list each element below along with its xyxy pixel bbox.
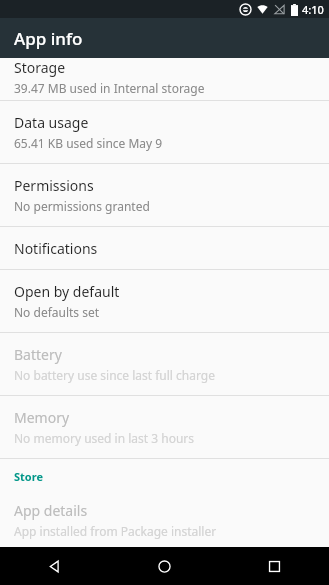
- staticText: Permissions: [14, 176, 94, 195]
- staticText: App info: [14, 27, 83, 50]
- staticText: No memory used in last 3 hours: [14, 430, 195, 446]
- staticText: 39.47 MB used in Internal storage: [14, 80, 205, 96]
- button[interactable]: Memory: [0, 396, 329, 458]
- staticText: Memory: [14, 408, 70, 427]
- staticText: No defaults set: [14, 304, 100, 320]
- staticText: Open by default: [14, 282, 120, 301]
- button[interactable]: Battery: [0, 333, 329, 395]
- staticText: Battery: [14, 345, 62, 364]
- staticText: 65.41 KB used since May 9: [14, 135, 163, 151]
- button[interactable]: Permissions: [0, 164, 329, 226]
- button[interactable]: Data usage: [0, 101, 329, 163]
- staticText: 4:10: [302, 2, 324, 17]
- staticText: Notifications: [14, 239, 98, 258]
- staticText: No battery use since last full charge: [14, 367, 215, 383]
- button[interactable]: Notifications: [0, 227, 329, 269]
- button[interactable]: Storage: [0, 58, 329, 100]
- staticText: Store: [14, 469, 43, 484]
- staticText: App installed from Package installer: [14, 523, 217, 539]
- button[interactable]: Open by default: [0, 270, 329, 332]
- staticText: No permissions granted: [14, 198, 150, 214]
- button[interactable]: Home: [109, 547, 219, 585]
- button[interactable]: Back: [0, 547, 109, 585]
- staticText: Data usage: [14, 113, 89, 132]
- staticText: App details: [14, 501, 88, 520]
- staticText: Storage: [14, 58, 66, 77]
- button[interactable]: App details: [0, 493, 329, 547]
- button[interactable]: Recent apps: [219, 547, 329, 585]
